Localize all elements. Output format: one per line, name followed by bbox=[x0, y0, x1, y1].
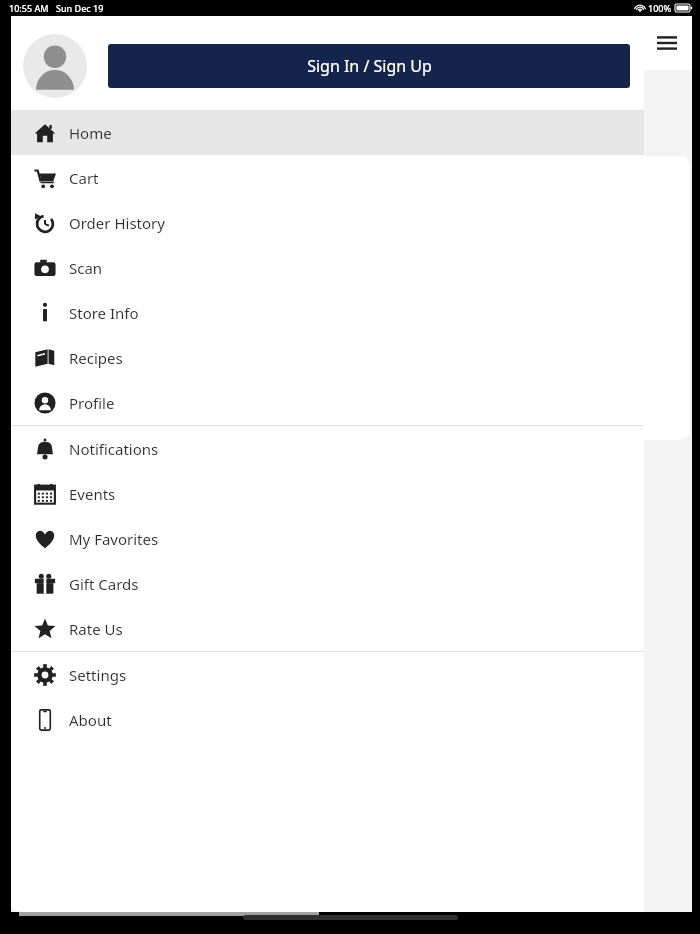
button[interactable]: My Favorites bbox=[11, 516, 644, 561]
button[interactable]: Cart bbox=[11, 155, 644, 200]
staticText: STAR bbox=[23, 458, 67, 484]
button[interactable]: Settings bbox=[11, 652, 644, 697]
button[interactable]: 3.9 bbox=[15, 494, 315, 816]
staticText: About bbox=[69, 710, 112, 730]
button[interactable]: Store Info bbox=[11, 290, 644, 335]
staticText: Recipes bbox=[69, 348, 123, 368]
staticText: Events bbox=[69, 484, 116, 504]
button[interactable]: Rate Us bbox=[11, 606, 644, 651]
staticText: 100% bbox=[648, 2, 672, 14]
staticText: 10:55 AM bbox=[9, 2, 49, 14]
button[interactable]: Order History bbox=[11, 200, 644, 245]
staticText: $13.9 bbox=[25, 729, 64, 749]
staticText: Settings bbox=[69, 665, 127, 685]
staticText: Home bbox=[69, 123, 112, 143]
button[interactable]: Gift Cards bbox=[11, 561, 644, 606]
staticText: Rate Us bbox=[69, 619, 123, 639]
button[interactable]: Notifications bbox=[11, 426, 644, 471]
staticText: Notifications bbox=[69, 439, 159, 459]
staticText: Sign In / Sign Up bbox=[307, 55, 432, 77]
button[interactable]: About bbox=[11, 697, 644, 742]
staticText: Order History bbox=[69, 213, 165, 233]
button[interactable]: Recipes bbox=[11, 335, 644, 380]
button[interactable]: Home bbox=[11, 110, 644, 155]
staticText: Store Info bbox=[69, 303, 139, 323]
staticText: 3.9 bbox=[27, 540, 44, 556]
button[interactable]: Menu bbox=[650, 26, 684, 60]
button[interactable]: Sign In / Sign Up bbox=[108, 44, 630, 88]
button[interactable]: Scan bbox=[11, 245, 644, 290]
staticText: Scan bbox=[69, 258, 103, 278]
staticText: Sun Dec 19 bbox=[56, 2, 104, 14]
staticText: Gift Cards bbox=[69, 574, 139, 594]
button[interactable]: Profile bbox=[11, 380, 644, 425]
staticText: My Favorites bbox=[69, 529, 159, 549]
staticText: Cart bbox=[69, 168, 99, 188]
button[interactable]: Events bbox=[11, 471, 644, 516]
staticText: Profile bbox=[69, 393, 115, 413]
